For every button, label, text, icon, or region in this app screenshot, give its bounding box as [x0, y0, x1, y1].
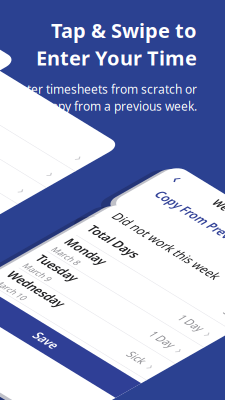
staticText: Enter timesheets from scratch or	[13, 81, 197, 97]
staticText: March 10	[18, 209, 88, 231]
staticText: Tap & Swipe to	[51, 17, 197, 44]
staticText: Total Days	[18, 21, 130, 51]
staticText: Monday	[18, 65, 106, 95]
staticText: copy from a previous week.	[45, 98, 197, 114]
staticText: Tuesday	[18, 121, 107, 151]
staticText: Enter Your Time	[36, 45, 197, 71]
staticText: March 8	[18, 97, 79, 119]
staticText: Wednesday	[18, 177, 143, 207]
staticText: Did not work this week	[21, 10, 225, 40]
staticText: Week of March 8	[116, 8, 225, 34]
staticText: Save	[170, 252, 220, 282]
staticText: Copy From Previous	[34, 50, 225, 80]
staticText: March 9	[18, 153, 79, 175]
